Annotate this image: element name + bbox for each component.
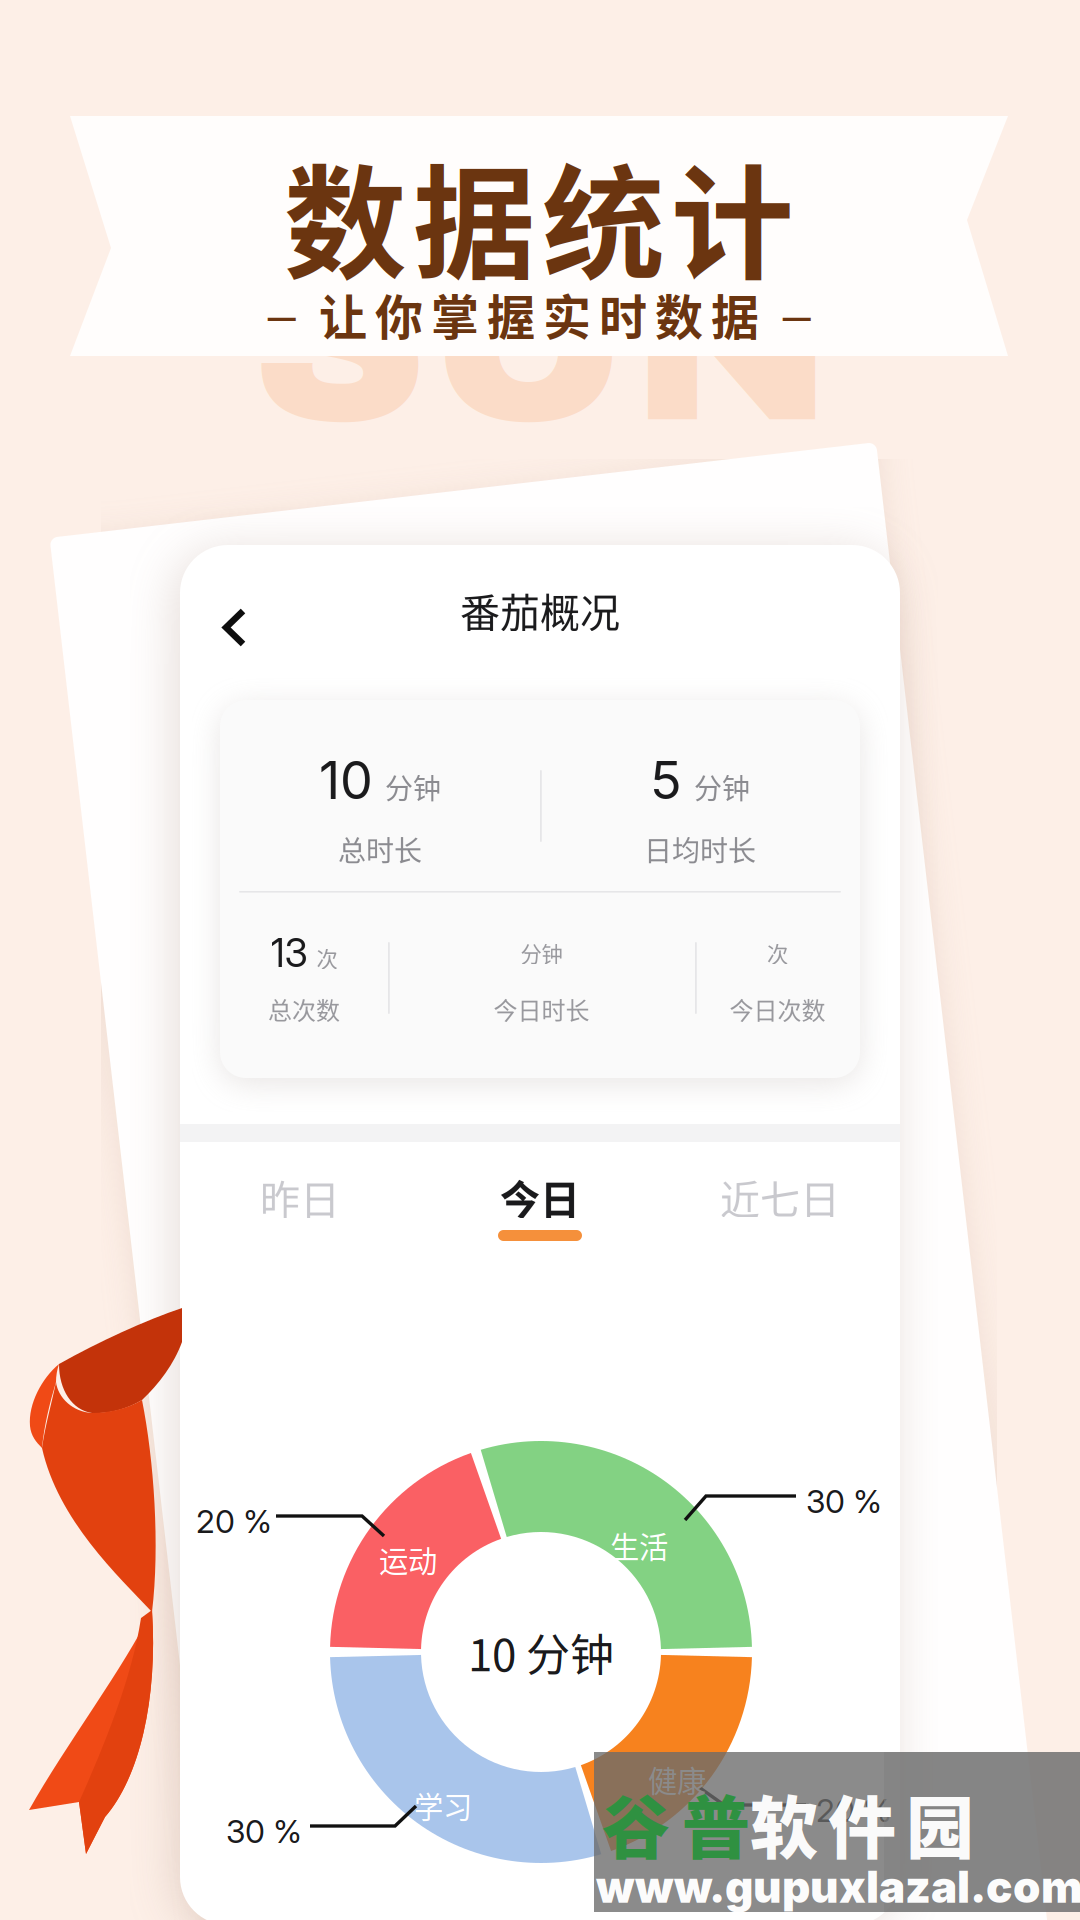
- staticText: 握: [487, 279, 535, 349]
- staticText: 分钟: [520, 938, 562, 968]
- staticText: 日均时长: [644, 829, 756, 869]
- staticText: 昨日: [260, 1168, 340, 1226]
- staticText: 20 %: [816, 1791, 892, 1830]
- staticText: 次: [316, 942, 337, 973]
- staticText: 你: [375, 279, 423, 349]
- staticText: 10 分钟: [468, 1620, 614, 1684]
- staticText: 30 %: [806, 1482, 882, 1521]
- staticText: 计: [671, 126, 794, 304]
- staticText: 10: [319, 748, 373, 811]
- staticText: 近七日: [720, 1168, 840, 1226]
- staticText: 总次数: [268, 992, 340, 1026]
- staticText: 运动: [379, 1538, 437, 1580]
- staticText: 分钟: [385, 766, 441, 807]
- staticText: 总时长: [338, 829, 422, 869]
- staticText: www.gupuxlazal.com: [596, 1860, 1080, 1913]
- staticText: 据: [413, 126, 536, 304]
- button[interactable]: Back: [204, 589, 265, 666]
- staticText: 统: [542, 126, 665, 304]
- staticText: 次: [767, 938, 788, 968]
- staticText: 实: [543, 279, 591, 349]
- staticText: 普: [682, 1774, 750, 1872]
- button[interactable]: 近七日: [660, 1127, 900, 1267]
- staticText: 今日次数: [729, 992, 825, 1026]
- staticText: 健康: [648, 1758, 706, 1800]
- staticText: 学习: [414, 1784, 472, 1826]
- staticText: 分钟: [694, 766, 750, 807]
- staticText: 今日: [500, 1168, 580, 1226]
- staticText: 今日时长: [493, 992, 589, 1026]
- staticText: 5: [650, 748, 682, 811]
- staticText: SUN: [251, 205, 833, 470]
- staticText: 件: [828, 1774, 896, 1872]
- staticText: 生活: [610, 1524, 668, 1566]
- button[interactable]: 昨日: [180, 1127, 420, 1267]
- staticText: 软: [750, 1774, 818, 1872]
- staticText: 让: [319, 279, 367, 349]
- staticText: —: [781, 289, 812, 339]
- staticText: 谷: [602, 1774, 670, 1872]
- staticText: 园: [906, 1774, 974, 1872]
- staticText: 据: [711, 279, 759, 349]
- staticText: 13: [270, 930, 307, 976]
- staticText: 数: [284, 126, 407, 304]
- staticText: 时: [599, 279, 647, 349]
- staticText: 20 %: [196, 1502, 272, 1541]
- staticText: 30 %: [226, 1812, 302, 1851]
- staticText: 掌: [431, 279, 479, 349]
- button[interactable]: 今日: [420, 1127, 660, 1267]
- staticText: —: [266, 289, 297, 339]
- staticText: 数: [655, 279, 703, 349]
- staticText: 番茄概况: [460, 581, 620, 639]
